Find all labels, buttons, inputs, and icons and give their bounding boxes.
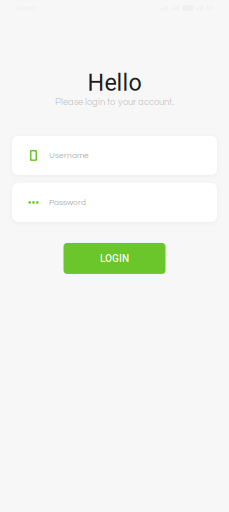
staticText: LOGIN [100, 252, 129, 264]
staticText: Password [49, 198, 86, 207]
staticText: Hello [87, 69, 141, 96]
button[interactable]: Password [12, 183, 217, 222]
button[interactable]: LOGIN [63, 243, 165, 274]
button[interactable]: Username [12, 136, 217, 175]
staticText: Please login to your account. [55, 97, 174, 107]
staticText: Username [49, 151, 89, 160]
